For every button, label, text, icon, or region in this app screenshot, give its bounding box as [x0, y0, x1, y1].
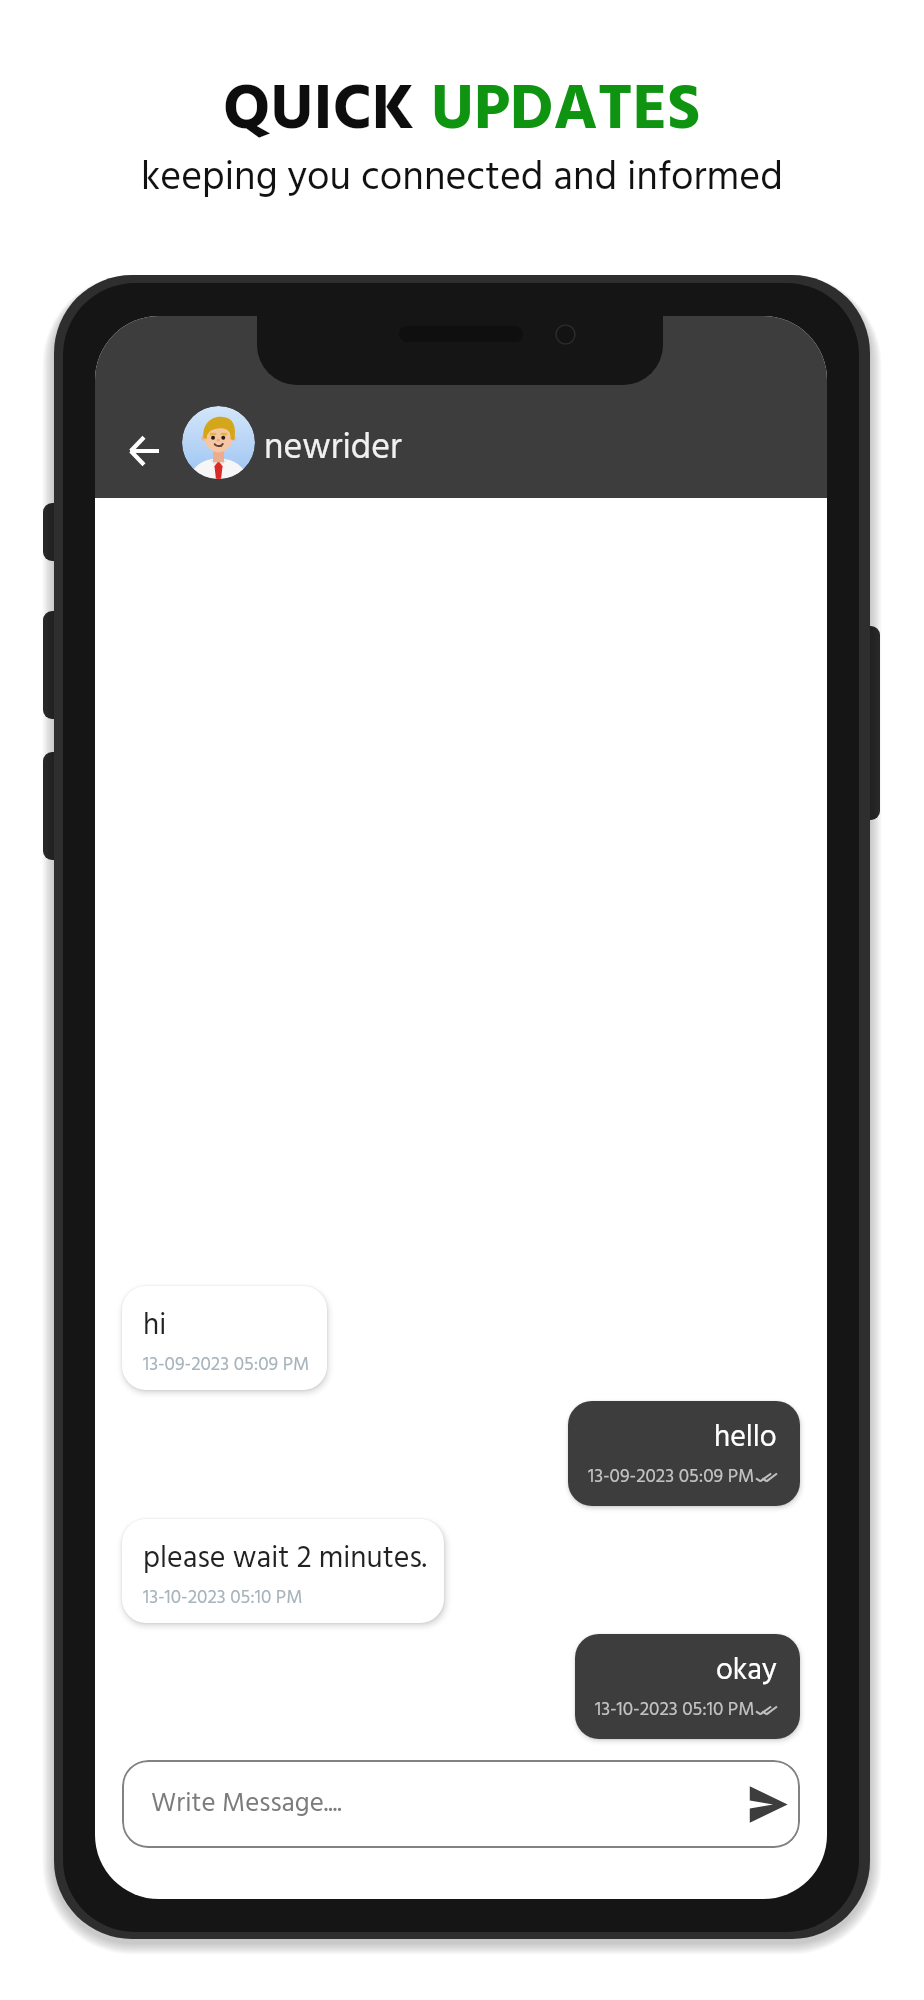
- button[interactable]: okay: [575, 1634, 800, 1739]
- staticText: hello: [714, 1414, 777, 1462]
- staticText: 13-10-2023 05:10 PM: [595, 1695, 755, 1725]
- staticText: 13-09-2023 05:09 PM: [588, 1462, 755, 1492]
- button[interactable]: Write Message....: [122, 1760, 800, 1848]
- button[interactable]: please wait 2 minutes.: [122, 1519, 444, 1623]
- staticText: Write Message....: [151, 1783, 342, 1826]
- staticText: 13-10-2023 05:10 PM: [143, 1583, 303, 1613]
- staticText: keeping you connected and informed: [141, 147, 783, 211]
- staticText: UPDATES: [431, 60, 701, 162]
- button[interactable]: hello: [568, 1401, 800, 1506]
- staticText: hi: [143, 1302, 167, 1350]
- button[interactable]: Send: [740, 1776, 796, 1832]
- staticText: okay: [716, 1647, 777, 1695]
- staticText: newrider: [264, 420, 402, 478]
- staticText: 13-09-2023 05:09 PM: [143, 1350, 310, 1380]
- button[interactable]: hi: [122, 1286, 327, 1390]
- button[interactable]: Back: [110, 417, 178, 485]
- staticText: QUICK: [223, 60, 431, 162]
- staticText: please wait 2 minutes.: [143, 1535, 427, 1583]
